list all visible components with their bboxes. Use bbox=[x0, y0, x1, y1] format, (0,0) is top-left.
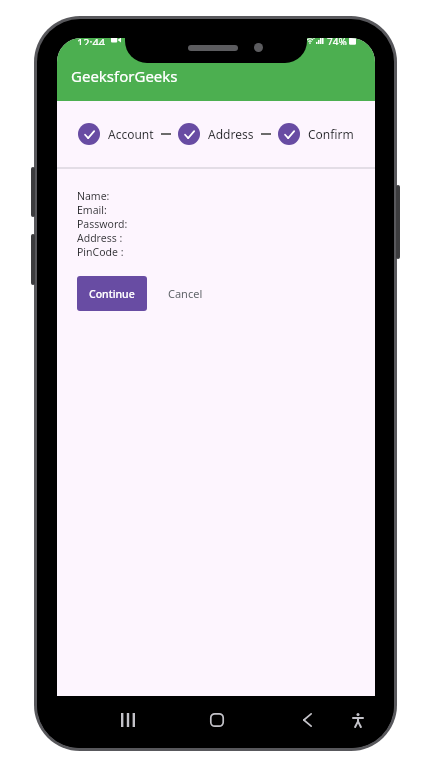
button[interactable]: Back bbox=[287, 709, 327, 731]
staticText: PinCode : bbox=[77, 245, 124, 259]
button[interactable]: Account bbox=[78, 123, 154, 145]
button[interactable]: Confirm bbox=[278, 123, 354, 145]
staticText: Account bbox=[108, 126, 154, 142]
staticText: Continue bbox=[89, 287, 135, 301]
staticText: Address bbox=[208, 126, 254, 142]
button[interactable]: Continue bbox=[77, 276, 147, 311]
staticText: Confirm bbox=[308, 126, 354, 142]
staticText: GeeksforGeeks bbox=[71, 66, 178, 86]
staticText: Password: bbox=[77, 217, 128, 231]
button[interactable]: Cancel bbox=[147, 276, 217, 311]
staticText: Email: bbox=[77, 203, 107, 217]
staticText: 74% bbox=[327, 38, 347, 45]
button[interactable]: Home bbox=[197, 709, 237, 731]
staticText: Cancel bbox=[168, 286, 203, 301]
staticText: Address : bbox=[77, 231, 123, 245]
button[interactable]: Address bbox=[178, 123, 254, 145]
button[interactable]: Accessibility bbox=[338, 709, 378, 731]
staticText: Name: bbox=[77, 189, 110, 203]
staticText: 12:44 bbox=[77, 38, 106, 45]
button[interactable]: Recent apps bbox=[108, 709, 148, 731]
